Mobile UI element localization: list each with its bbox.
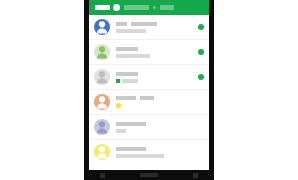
button[interactable]: [89, 115, 209, 139]
button[interactable]: [89, 65, 209, 89]
button[interactable]: [89, 90, 209, 114]
button[interactable]: [89, 40, 209, 64]
button[interactable]: [89, 140, 209, 164]
button[interactable]: App bar: [89, 0, 209, 15]
button[interactable]: [89, 15, 209, 39]
